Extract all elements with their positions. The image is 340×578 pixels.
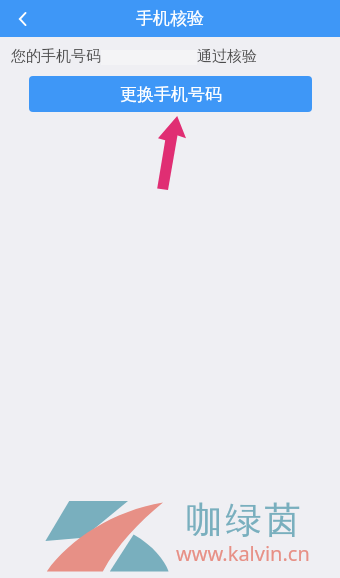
staticText: 更换手机号码 [120,84,222,105]
staticText: www.kalvin.cn [176,540,310,567]
staticText: 手机核验 [136,8,204,29]
staticText: 通过核验 [197,47,257,66]
staticText: 您的手机号码 [11,47,101,66]
button[interactable]: Back [0,0,46,37]
button[interactable]: 更换手机号码 [29,76,312,112]
staticText: 咖绿茵 [185,497,302,542]
